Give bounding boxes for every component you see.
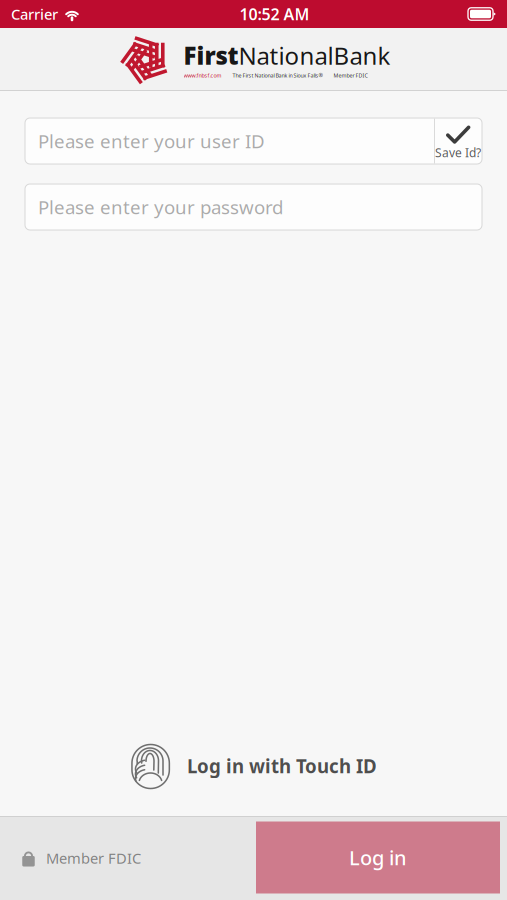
staticText: Member FDIC — [333, 72, 367, 79]
staticText: The First National Bank in Sioux Falls® — [232, 72, 322, 79]
staticText: Save Id? — [435, 144, 481, 160]
staticText: Member FDIC — [46, 848, 141, 868]
staticText: Please enter your password — [38, 195, 283, 219]
staticText: Carrier — [11, 4, 58, 24]
button[interactable]: Log in — [256, 821, 500, 893]
staticText: Log in with Touch ID — [187, 754, 377, 778]
staticText: 10:52 AM — [239, 3, 309, 25]
staticText: www.fnbsf.com — [183, 72, 221, 79]
staticText: Please enter your user ID — [38, 129, 265, 153]
staticText: National — [238, 40, 333, 71]
button[interactable]: Save Id? — [434, 118, 482, 163]
staticText: First — [183, 40, 238, 71]
staticText: Bank — [333, 40, 390, 71]
button[interactable]: Log in with Touch ID — [0, 733, 507, 799]
staticText: Log in — [349, 844, 407, 871]
